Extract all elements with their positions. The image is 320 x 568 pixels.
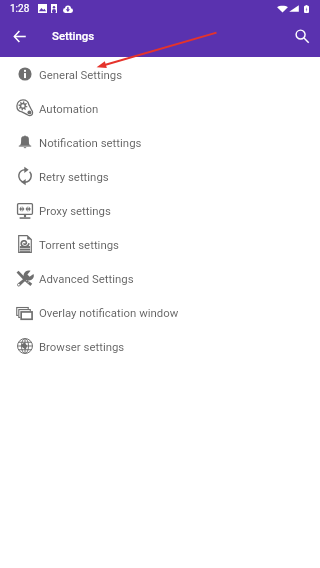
button[interactable]: Search xyxy=(288,23,316,51)
staticText: General Settings xyxy=(39,68,123,81)
button[interactable]: Advanced Settings xyxy=(0,261,320,295)
staticText: Settings xyxy=(52,29,95,42)
button[interactable]: Retry settings xyxy=(0,159,320,193)
button[interactable]: Proxy settings xyxy=(0,193,320,227)
staticText: Automation xyxy=(39,102,99,115)
button[interactable]: Notification settings xyxy=(0,125,320,159)
button[interactable]: Torrent settings xyxy=(0,227,320,261)
staticText: Torrent settings xyxy=(39,238,119,251)
button[interactable]: General Settings xyxy=(0,57,320,91)
staticText: Browser settings xyxy=(39,340,125,353)
staticText: Retry settings xyxy=(39,170,109,183)
button[interactable]: Overlay notification window xyxy=(0,295,320,329)
staticText: Proxy settings xyxy=(39,204,111,217)
button[interactable]: Browser settings xyxy=(0,329,320,363)
button[interactable]: Navigate up xyxy=(6,23,34,51)
staticText: 1:28 xyxy=(10,3,30,15)
staticText: Overlay notification window xyxy=(39,306,179,319)
staticText: Notification settings xyxy=(39,136,142,149)
staticText: Advanced Settings xyxy=(39,272,134,285)
button[interactable]: Automation xyxy=(0,91,320,125)
